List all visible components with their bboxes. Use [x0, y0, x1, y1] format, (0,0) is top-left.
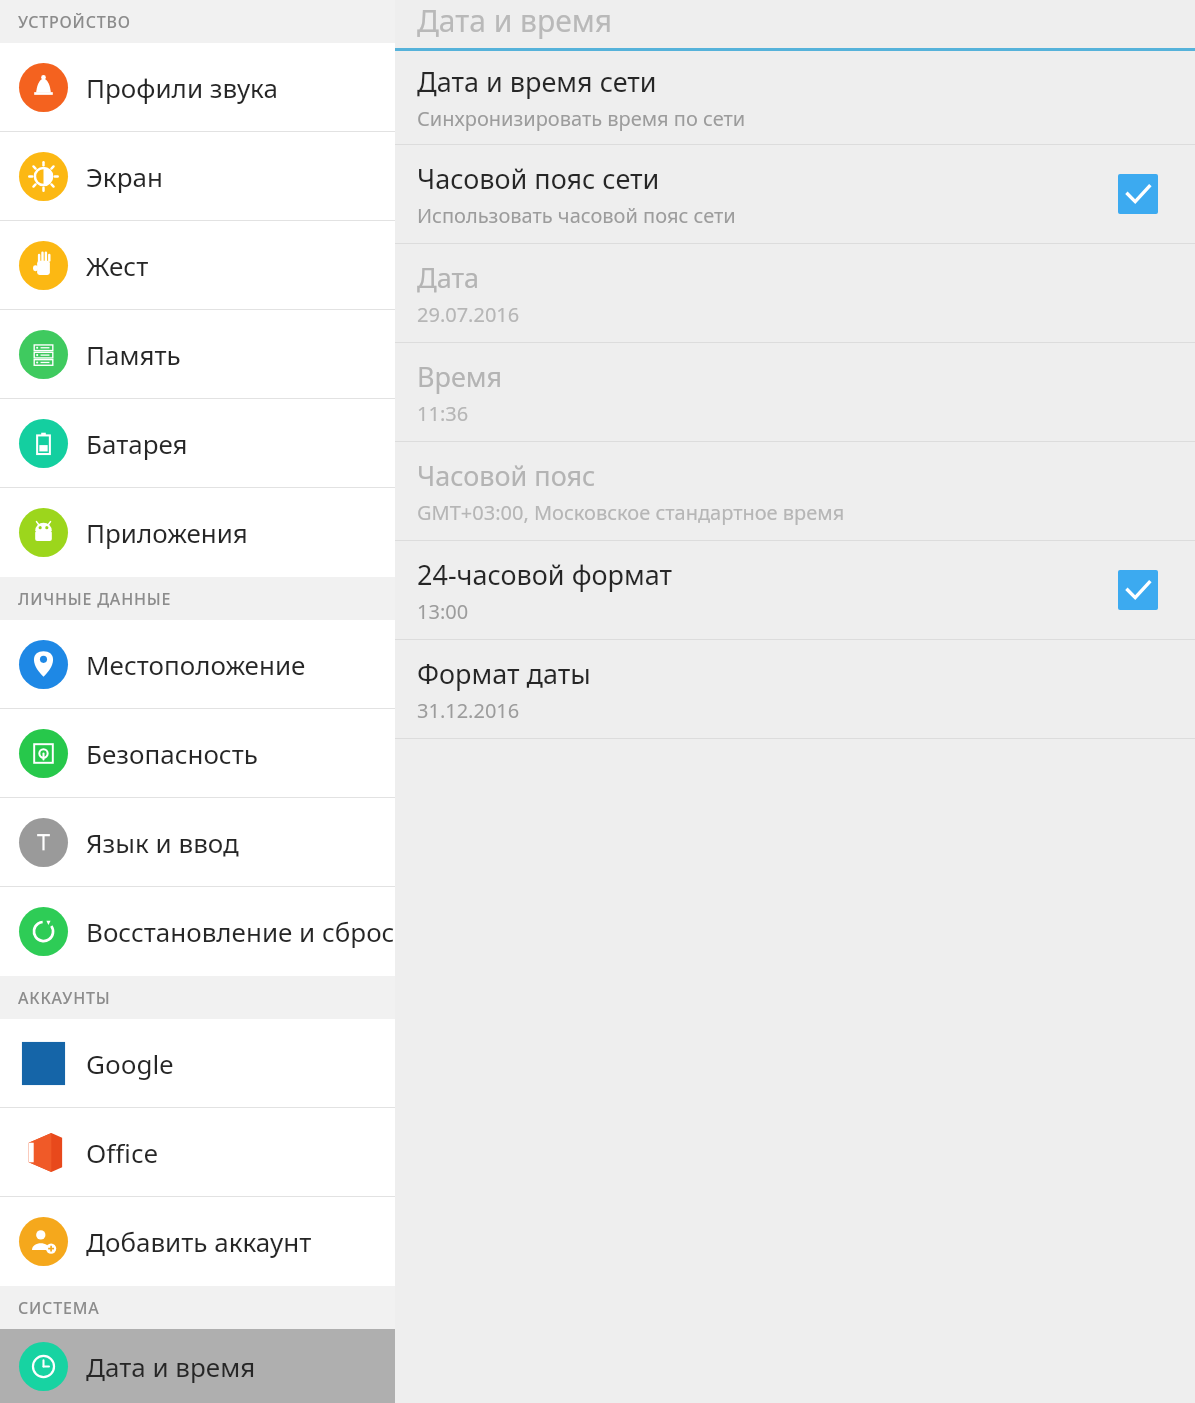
staticText: УСТРОЙСТВО	[18, 11, 131, 33]
button[interactable]: Память	[0, 310, 395, 398]
staticText: 13:00	[417, 598, 469, 625]
staticText: ЛИЧНЫЕ ДАННЫЕ	[18, 588, 172, 610]
staticText: Безопасность	[86, 736, 258, 771]
staticText: Память	[86, 337, 181, 372]
staticText: Дата	[417, 259, 479, 296]
staticText: Местоположение	[86, 647, 306, 682]
staticText: Формат даты	[417, 655, 591, 692]
button[interactable]: Добавить аккаунт	[0, 1197, 395, 1286]
staticText: Восстановление и сброс	[86, 914, 395, 949]
button[interactable]: Приложения	[0, 488, 395, 577]
staticText: Дата и время	[86, 1349, 256, 1384]
button[interactable]: Часовой пояс	[395, 442, 1195, 540]
staticText: Дата и время сети	[417, 63, 657, 100]
staticText: Часовой пояс	[417, 457, 596, 494]
staticText: СИСТЕМА	[18, 1297, 100, 1319]
staticText: Жест	[86, 248, 149, 283]
staticText: Язык и ввод	[86, 825, 239, 860]
button[interactable]: Google	[0, 1019, 395, 1107]
staticText: Office	[86, 1135, 159, 1170]
staticText: 29.07.2016	[417, 301, 520, 328]
button[interactable]: Checkbox 24-часовой формат	[1118, 570, 1158, 610]
staticText: Время	[417, 358, 503, 395]
button[interactable]: Жест	[0, 221, 395, 309]
button[interactable]: Дата и время сети	[395, 51, 1195, 144]
button[interactable]: Дата и время	[0, 1329, 395, 1403]
button[interactable]: Восстановление и сброс	[0, 887, 395, 976]
staticText: 11:36	[417, 400, 469, 427]
staticText: Приложения	[86, 515, 248, 550]
button[interactable]: Часовой пояс сети	[395, 145, 1195, 243]
staticText: Экран	[86, 159, 163, 194]
button[interactable]: Безопасность	[0, 709, 395, 797]
staticText: Google	[86, 1046, 174, 1081]
button[interactable]: Формат даты	[395, 640, 1195, 738]
staticText: GMT+03:00, Московское стандартное время	[417, 499, 845, 526]
button[interactable]: Язык и ввод	[0, 798, 395, 886]
staticText: Использовать часовой пояс сети	[417, 202, 736, 229]
button[interactable]: Checkbox Часовой пояс сети	[1118, 174, 1158, 214]
button[interactable]: Профили звука	[0, 43, 395, 131]
staticText: Профили звука	[86, 70, 278, 105]
staticText: Синхронизировать время по сети	[417, 105, 746, 132]
staticText: Добавить аккаунт	[86, 1224, 312, 1259]
button[interactable]: 24-часовой формат	[395, 541, 1195, 639]
staticText: Батарея	[86, 426, 188, 461]
button[interactable]: Экран	[0, 132, 395, 220]
button[interactable]: Дата	[395, 244, 1195, 342]
button[interactable]: Время	[395, 343, 1195, 441]
staticText: Дата и время	[417, 0, 613, 41]
staticText: 31.12.2016	[417, 697, 520, 724]
staticText: АККАУНТЫ	[18, 987, 111, 1009]
staticText: 24-часовой формат	[417, 556, 673, 593]
staticText: Часовой пояс сети	[417, 160, 660, 197]
button[interactable]: Батарея	[0, 399, 395, 487]
button[interactable]: Office	[0, 1108, 395, 1196]
button[interactable]: Местоположение	[0, 620, 395, 708]
